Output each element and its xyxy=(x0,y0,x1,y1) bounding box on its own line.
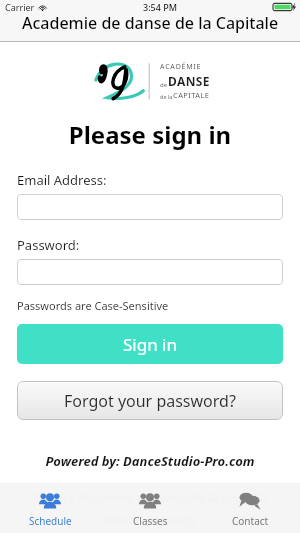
button[interactable]: Forgot your password? xyxy=(17,381,283,420)
staticText: Select Language xyxy=(104,511,197,527)
staticText: Schedule xyxy=(29,514,72,528)
staticText: Passwords are Case-Sensitive xyxy=(17,298,169,313)
button[interactable]: Classes xyxy=(100,483,200,533)
staticText: Academie de danse de la Capitale xyxy=(22,12,279,34)
staticText: Password: xyxy=(17,236,80,254)
button[interactable]: Email Address xyxy=(17,194,283,220)
staticText: Carrier xyxy=(5,1,35,13)
staticText: Classes xyxy=(133,514,168,528)
button[interactable]: Password xyxy=(17,259,283,285)
button[interactable]: Schedule xyxy=(0,483,100,533)
staticText: de la xyxy=(160,93,173,100)
staticText: Contact xyxy=(232,514,269,528)
button[interactable]: Sign in xyxy=(17,324,283,364)
staticText: Email Address: xyxy=(17,171,107,189)
staticText: © 2017 Academie de danse de la Capitale xyxy=(34,489,267,505)
staticText: 3:54 PM xyxy=(143,1,177,13)
button[interactable]: Contact xyxy=(200,483,300,533)
staticText: ACADÉMIE xyxy=(160,62,202,72)
staticText: de xyxy=(160,81,168,89)
staticText: DANSE xyxy=(168,73,210,89)
staticText: Forgot your password? xyxy=(64,390,236,412)
staticText: CAPITALE xyxy=(173,90,210,100)
staticText: Powered by: DanceStudio-Pro.com xyxy=(0,452,300,470)
staticText: Please sign in xyxy=(0,118,300,151)
staticText: Sign in xyxy=(123,333,177,356)
